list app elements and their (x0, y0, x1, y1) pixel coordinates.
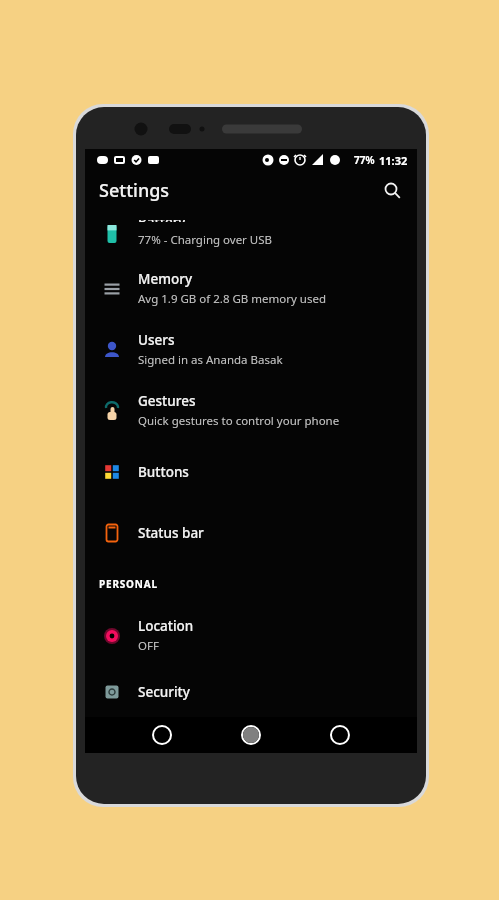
staticText: 11:32 (379, 153, 408, 168)
staticText: Gestures (138, 392, 196, 410)
button[interactable]: Gestures (85, 380, 417, 441)
staticText: Signed in as Ananda Basak (138, 352, 283, 368)
staticText: PERSONAL (99, 577, 158, 591)
staticText: OFF (138, 638, 159, 654)
button[interactable]: Buttons (85, 441, 417, 502)
staticText: 77% - Charging over USB (138, 232, 273, 248)
staticText: Users (138, 331, 175, 349)
button[interactable]: Location (85, 605, 417, 666)
button[interactable]: Memory (85, 258, 417, 319)
staticText: Status bar (138, 524, 204, 542)
button[interactable]: Status bar (85, 502, 417, 563)
button[interactable]: Security (85, 666, 417, 717)
staticText: Battery (138, 220, 186, 222)
staticText: Security (138, 683, 190, 701)
staticText: Settings (99, 178, 170, 203)
button[interactable]: Battery (85, 210, 417, 258)
button[interactable]: Search (377, 175, 407, 205)
staticText: 77% (354, 153, 375, 167)
button[interactable]: Users (85, 319, 417, 380)
staticText: Location (138, 617, 194, 635)
staticText: Memory (138, 270, 193, 288)
staticText: Avg 1.9 GB of 2.8 GB memory used (138, 291, 327, 307)
staticText: Buttons (138, 463, 189, 481)
staticText: Quick gestures to control your phone (138, 413, 340, 429)
